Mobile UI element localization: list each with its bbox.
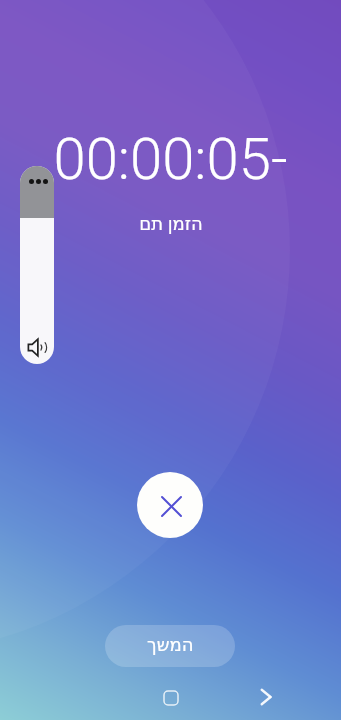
button[interactable]: המשך <box>105 625 235 667</box>
staticText: 00:00:05- <box>53 125 288 193</box>
staticText: המשך <box>147 634 194 655</box>
button[interactable]: More options <box>20 166 54 218</box>
button[interactable]: Dismiss <box>137 472 203 538</box>
button[interactable]: Home <box>150 677 192 719</box>
button[interactable]: Back <box>242 676 284 718</box>
staticText: הזמן תם <box>139 211 203 236</box>
